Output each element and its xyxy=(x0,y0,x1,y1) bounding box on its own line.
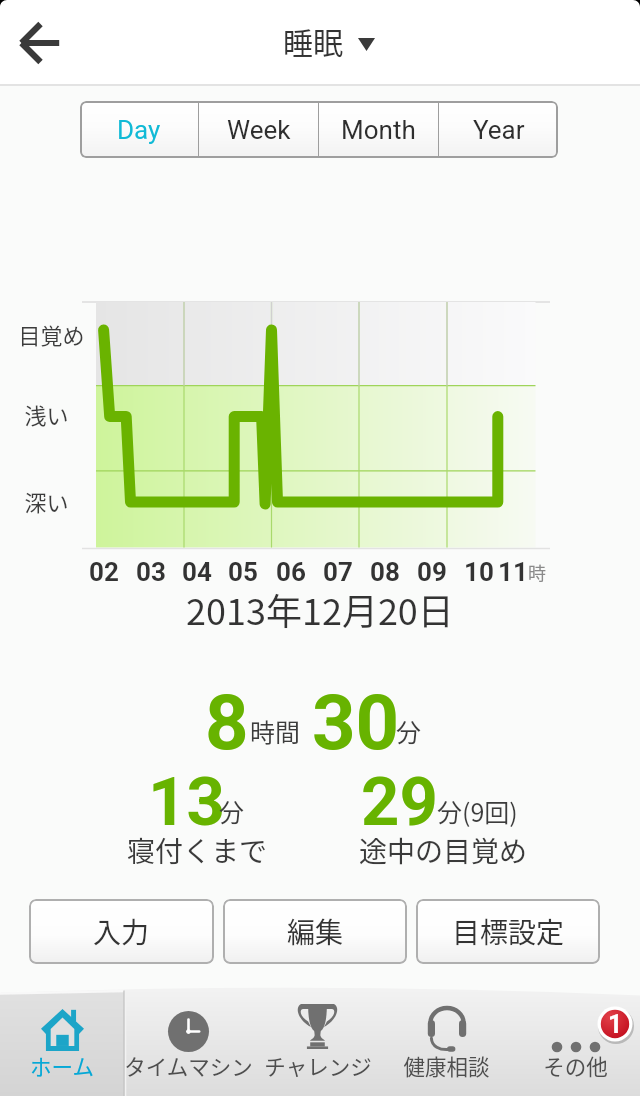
staticText: 浅い xyxy=(24,398,69,428)
staticText: 睡眠 xyxy=(283,19,343,62)
staticText: 目標設定 xyxy=(452,911,565,952)
staticText: 深い xyxy=(24,485,69,515)
button[interactable]: 健康相談 xyxy=(382,980,511,1096)
staticText: 29 xyxy=(361,763,438,842)
staticText: 2013年12月20日 xyxy=(186,583,454,635)
staticText: 13 xyxy=(148,763,225,842)
staticText: 04 xyxy=(177,557,217,587)
staticText: ホーム xyxy=(30,1050,94,1081)
staticText: 05 xyxy=(223,557,263,587)
button[interactable]: Day xyxy=(80,101,198,158)
staticText: Year xyxy=(473,115,525,145)
staticText: 07 xyxy=(318,557,358,587)
staticText: 10 xyxy=(459,557,499,587)
staticText: タイムマシン xyxy=(124,1050,253,1081)
staticText: 入力 xyxy=(93,911,150,952)
staticText: Week xyxy=(227,115,291,145)
staticText: 08 xyxy=(365,557,405,587)
button[interactable]: タイムマシン xyxy=(124,980,253,1096)
staticText: 06 xyxy=(271,557,311,587)
staticText: 30 xyxy=(312,678,400,767)
staticText: 編集 xyxy=(287,911,344,952)
staticText: 8 xyxy=(205,678,249,767)
staticText: 目覚め xyxy=(18,318,85,348)
button[interactable]: その他 xyxy=(511,980,640,1096)
button[interactable]: 編集 xyxy=(223,899,407,964)
button[interactable]: Week xyxy=(199,101,318,158)
staticText: 分 xyxy=(396,713,422,749)
staticText: Day xyxy=(117,115,161,145)
staticText: 11 xyxy=(498,557,528,587)
button[interactable]: 入力 xyxy=(29,899,214,964)
staticText: チャレンジ xyxy=(264,1050,372,1081)
staticText: 分(9回) xyxy=(437,793,518,829)
button[interactable]: 目標設定 xyxy=(416,899,600,964)
staticText: 02 xyxy=(84,557,124,587)
staticText: 時間 xyxy=(250,713,301,749)
staticText: その他 xyxy=(543,1050,608,1081)
button[interactable]: ホーム xyxy=(0,980,124,1096)
button[interactable]: Back xyxy=(0,0,80,86)
staticText: 03 xyxy=(131,557,171,587)
staticText: 健康相談 xyxy=(403,1050,490,1081)
staticText: Month xyxy=(341,115,416,145)
staticText: 09 xyxy=(412,557,452,587)
staticText: 1 xyxy=(608,1010,623,1039)
staticText: 時 xyxy=(528,559,546,585)
staticText: 分 xyxy=(219,793,245,829)
staticText: 寝付くまで xyxy=(127,830,268,871)
button[interactable]: Month xyxy=(319,101,438,158)
button[interactable]: Year xyxy=(439,101,558,158)
button[interactable]: チャレンジ xyxy=(253,980,382,1096)
staticText: 途中の目覚め xyxy=(359,830,528,871)
